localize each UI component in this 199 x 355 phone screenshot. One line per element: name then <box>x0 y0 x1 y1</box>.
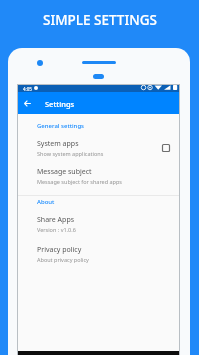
button[interactable]: System apps <box>18 138 179 158</box>
staticText: SIMPLE SETTINGS <box>43 11 157 29</box>
button[interactable]: Share Apps <box>18 214 179 234</box>
staticText: General settings <box>37 122 85 130</box>
staticText: Share Apps <box>37 215 75 225</box>
staticText: 4:05 <box>23 86 32 92</box>
staticText: About <box>37 198 55 206</box>
staticText: Settings <box>45 99 75 109</box>
staticText: Message subject for shared apps <box>37 178 122 185</box>
staticText: Version : v1.0.6 <box>37 226 76 233</box>
button[interactable]: Privacy policy <box>18 244 179 264</box>
staticText: Message subject <box>37 167 92 177</box>
staticText: Show system applications <box>37 150 104 157</box>
button[interactable]: Message subject <box>18 166 179 186</box>
button[interactable]: System apps toggle <box>161 143 171 153</box>
staticText: Privacy policy <box>37 245 82 255</box>
button[interactable]: Back <box>18 94 37 113</box>
staticText: System apps <box>37 139 79 149</box>
staticText: About privacy policy <box>37 256 89 263</box>
